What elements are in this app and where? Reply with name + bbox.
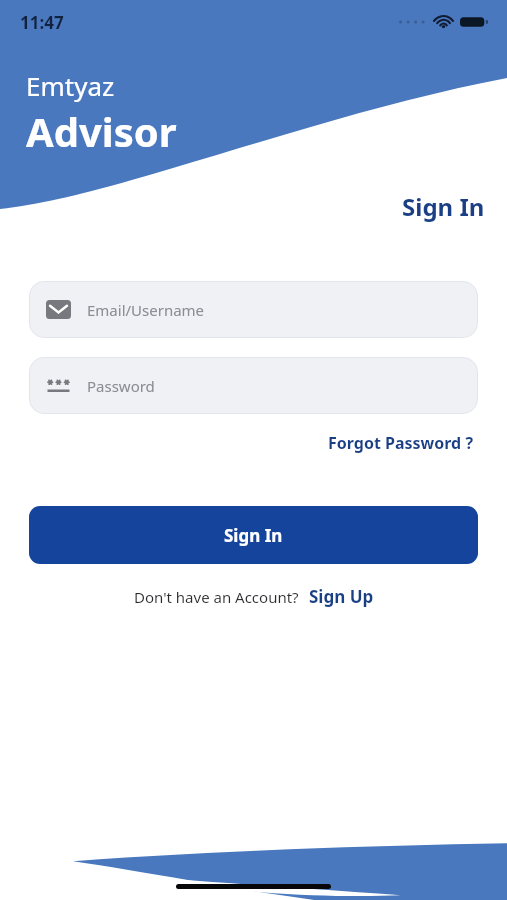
button[interactable]: Email/Username (29, 281, 478, 338)
button[interactable]: Sign In (29, 506, 478, 564)
staticText: Password (87, 376, 155, 396)
staticText: Advisor (26, 104, 177, 158)
button[interactable]: Sign Up (309, 585, 374, 608)
staticText: Forgot Password ? (328, 432, 474, 454)
button[interactable]: Forgot Password ? (324, 428, 478, 458)
staticText: Emtyaz (26, 68, 115, 103)
staticText: Sign In (402, 190, 485, 223)
staticText: Email/Username (87, 300, 205, 320)
staticText: Sign In (224, 524, 283, 547)
staticText: Don't have an Account? (134, 587, 299, 607)
button[interactable]: Password (29, 357, 478, 414)
staticText: Sign Up (309, 585, 374, 608)
staticText: 11:47 (20, 11, 64, 34)
